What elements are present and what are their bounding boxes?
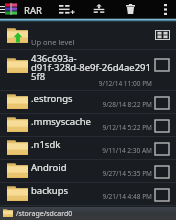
- button[interactable]: Select folder: [152, 57, 172, 73]
- staticText: 9/12/14 11:00 PM: [52, 79, 152, 88]
- button[interactable]: Select .n1sdk: [152, 141, 172, 157]
- button[interactable]: .n1sdk: [0, 137, 176, 160]
- staticText: 9/12/14 5:22 PM: [52, 123, 152, 132]
- button[interactable]: Delete: [119, 0, 141, 18]
- button[interactable]: Extract: [88, 0, 110, 18]
- staticText: Up one level: [31, 37, 75, 47]
- button[interactable]: backups: [0, 183, 176, 206]
- button[interactable]: Select Android: [152, 164, 172, 180]
- button[interactable]: Select .mmsyscache: [152, 118, 172, 134]
- staticText: .mmsyscache: [31, 115, 149, 128]
- button[interactable]: More options: [155, 0, 176, 18]
- staticText: .n1sdk: [31, 138, 149, 151]
- staticText: 9/21/14 4:48 PM: [52, 192, 152, 201]
- staticText: Android: [31, 161, 149, 174]
- staticText: .estrongs: [31, 92, 149, 105]
- staticText: 436c693a- d91f-328d-8e9f-26d4ae291 5f8: [31, 52, 151, 83]
- button[interactable]: Add to archive: [56, 0, 78, 18]
- button[interactable]: .estrongs: [0, 91, 176, 114]
- staticText: RAR: [24, 4, 42, 17]
- button[interactable]: Select backups: [152, 187, 172, 203]
- button[interactable]: /storage/sdcard0: [0, 207, 176, 220]
- button[interactable]: 436c693a- d91f-328d-8e9f-26d4ae291 5f8: [0, 50, 176, 91]
- button[interactable]: Select .estrongs: [152, 95, 172, 111]
- staticText: 9/28/14 8:22 PM: [52, 100, 152, 109]
- button[interactable]: Navigation menu: [0, 0, 7, 18]
- button[interactable]: .mmsyscache: [0, 114, 176, 137]
- button[interactable]: Up one level: [0, 22, 176, 50]
- staticText: 9/27/14 5:35 PM: [52, 169, 152, 178]
- button[interactable]: Android: [0, 160, 176, 183]
- staticText: /storage/sdcard0: [16, 209, 73, 219]
- staticText: 9/11/14 2:30 AM: [52, 146, 152, 155]
- staticText: backups: [31, 184, 149, 197]
- button[interactable]: Switch view: [152, 27, 173, 43]
